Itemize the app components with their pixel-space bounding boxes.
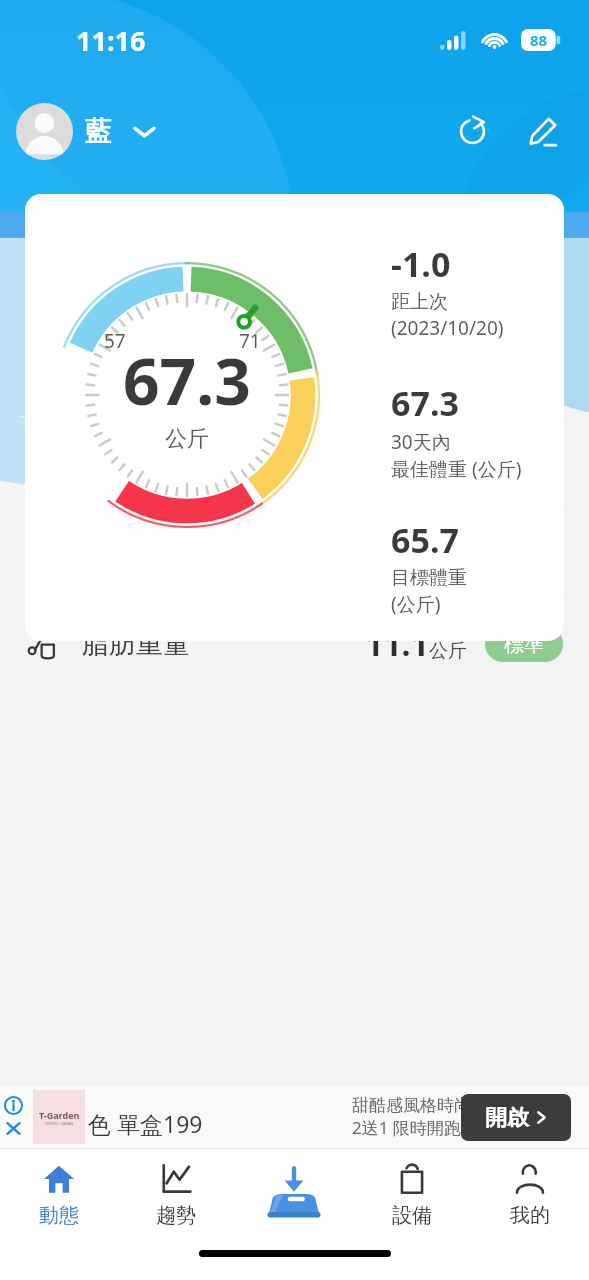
staticText: 色 單盒199 bbox=[88, 1108, 203, 1139]
staticText: 開啟 bbox=[485, 1104, 529, 1132]
staticText: 57 bbox=[104, 328, 126, 354]
staticText: 公斤 bbox=[165, 425, 209, 453]
button[interactable]: 動態 bbox=[0, 1148, 117, 1240]
staticText: 設備 bbox=[392, 1203, 432, 1228]
staticText: 目標體重 (公斤) bbox=[391, 566, 467, 616]
button[interactable]: 標準 bbox=[485, 626, 563, 662]
staticText: % bbox=[451, 546, 467, 572]
staticText: 體重 bbox=[82, 354, 136, 388]
staticText: 67.3 bbox=[391, 380, 459, 426]
staticText: 21.7 bbox=[403, 440, 467, 484]
button[interactable]: 脂肪重量 bbox=[26, 599, 563, 689]
staticText: 2023-10-21 09:05 bbox=[62, 272, 255, 305]
button[interactable]: BMI bbox=[26, 417, 563, 507]
staticText: BMI bbox=[82, 444, 134, 481]
staticText: 65.7 bbox=[391, 517, 459, 563]
button[interactable]: Edit bbox=[519, 108, 565, 154]
staticText: 67.3 bbox=[123, 337, 251, 424]
button[interactable]: 開啟 bbox=[461, 1094, 571, 1141]
staticText: 我的 bbox=[510, 1203, 550, 1228]
button[interactable]: 設備 bbox=[353, 1148, 471, 1240]
button[interactable]: Profile avatar bbox=[16, 103, 73, 160]
staticText: 71 bbox=[239, 328, 261, 354]
button[interactable]: 趨勢 bbox=[117, 1148, 235, 1240]
staticText: T-Garden bbox=[39, 1109, 80, 1121]
staticText: 11:16 bbox=[76, 22, 146, 59]
staticText: 動態 bbox=[39, 1203, 79, 1228]
button[interactable]: 2023-10-21 09:05 bbox=[28, 260, 561, 316]
button[interactable]: Measure bbox=[235, 1148, 353, 1240]
button[interactable]: 藍 bbox=[85, 115, 154, 148]
staticText: 67.3 bbox=[365, 349, 429, 393]
staticText: 甜酷感風格時尚 bbox=[352, 1095, 471, 1116]
staticText: 脂肪重量 bbox=[82, 627, 190, 661]
staticText: 公斤 bbox=[429, 639, 467, 663]
staticText: TOKYO / JAPAN bbox=[45, 1121, 74, 1126]
button[interactable]: 標準 bbox=[485, 444, 563, 480]
staticText: 30天內 最佳體重 (公斤) bbox=[391, 429, 522, 481]
staticText: 距上次 (2023/10/20) bbox=[391, 290, 504, 340]
staticText: -1.0 bbox=[391, 241, 451, 287]
button[interactable]: 我的 bbox=[471, 1148, 589, 1240]
staticText: 藍 bbox=[85, 115, 111, 148]
staticText: 88 bbox=[530, 30, 548, 50]
button[interactable]: 脂肪率 bbox=[26, 508, 563, 598]
staticText: 標準 bbox=[504, 632, 544, 657]
button[interactable]: Close ad bbox=[4, 1119, 23, 1138]
button[interactable]: 體重 bbox=[26, 326, 563, 416]
staticText: 趨勢 bbox=[156, 1203, 196, 1228]
staticText: 標準 bbox=[504, 450, 544, 475]
staticText: 2送1 限時開跑 bbox=[352, 1116, 461, 1139]
button[interactable]: Refresh bbox=[449, 108, 495, 154]
staticText: 11.1 bbox=[365, 622, 429, 666]
button[interactable]: 57 bbox=[25, 194, 564, 641]
staticText: 16.4 bbox=[387, 531, 451, 575]
